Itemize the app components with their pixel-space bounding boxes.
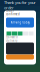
staticText: Thank you for your order	[4, 0, 36, 10]
staticText: Estimated delivery	[6, 35, 18, 43]
staticText: Arriving today	[10, 21, 29, 24]
staticText: Order confirmed	[6, 9, 20, 16]
